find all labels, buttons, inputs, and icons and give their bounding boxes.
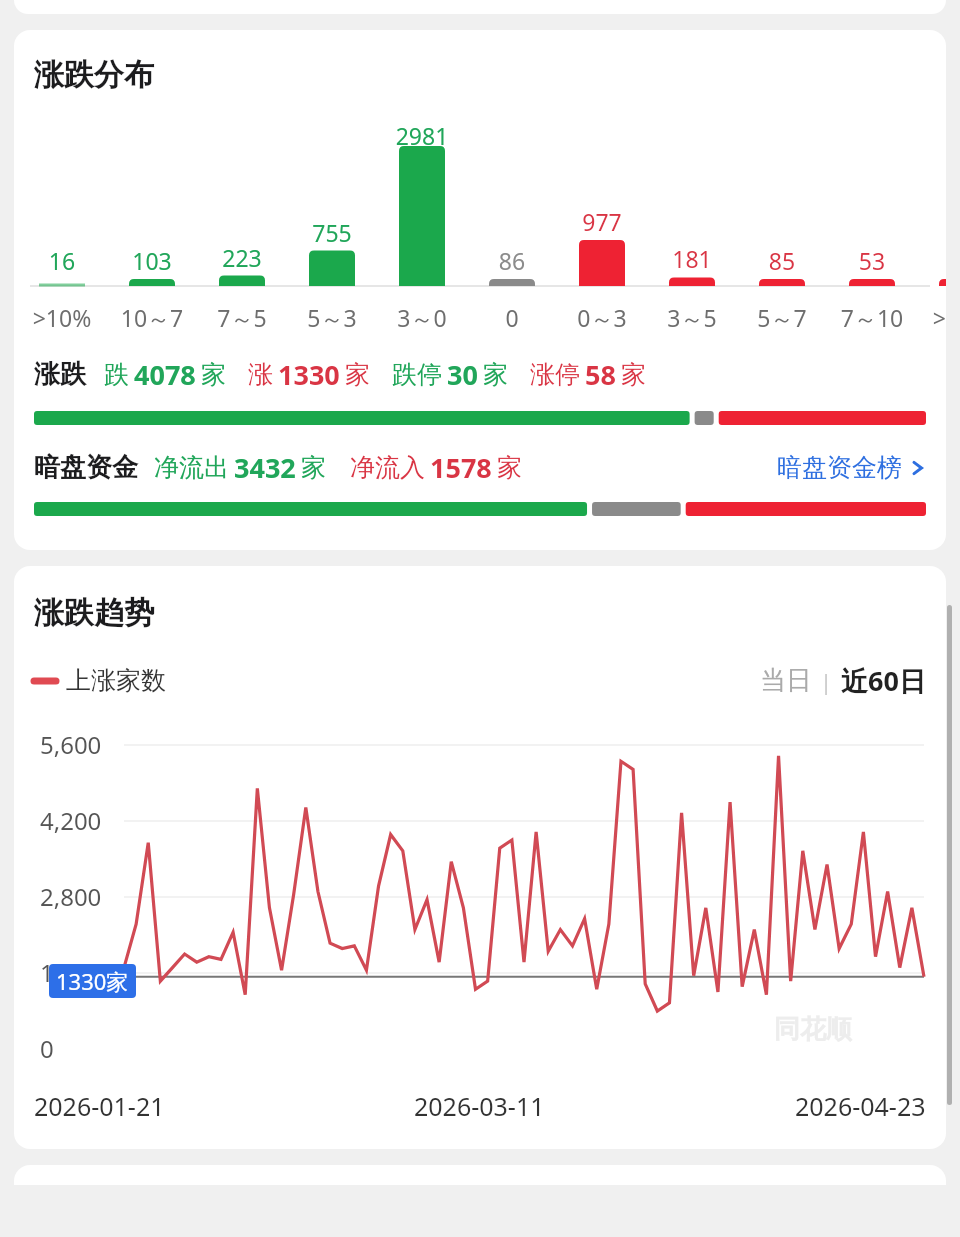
staticText: >10%: [917, 302, 946, 333]
staticText: 3432: [234, 449, 296, 486]
staticText: 涨停: [530, 359, 580, 390]
button[interactable]: 涨: [248, 356, 370, 393]
staticText: 5～7: [737, 302, 827, 333]
staticText: 净流入: [350, 452, 425, 483]
staticText: 4078: [134, 356, 196, 393]
staticText: 4,200: [40, 804, 102, 837]
staticText: 家: [483, 359, 508, 390]
staticText: 103: [107, 245, 197, 276]
staticText: 53: [827, 245, 917, 276]
staticText: 2,800: [40, 880, 102, 913]
button[interactable]: 暗盘资金榜: [777, 452, 926, 483]
staticText: 5～3: [287, 302, 377, 333]
staticText: 86: [467, 245, 557, 276]
staticText: 5,600: [40, 728, 102, 761]
staticText: 181: [647, 243, 737, 274]
staticText: 85: [737, 245, 827, 276]
staticText: 7～5: [197, 302, 287, 333]
staticText: 2026-04-23: [795, 1089, 926, 1123]
staticText: 跌停: [392, 359, 442, 390]
staticText: 3～0: [377, 302, 467, 333]
staticText: 家: [345, 359, 370, 390]
staticText: 30: [447, 356, 478, 393]
staticText: 58: [585, 356, 616, 393]
staticText: 上涨家数: [66, 665, 166, 696]
staticText: 0～3: [557, 302, 647, 333]
staticText: 2026-03-11: [414, 1089, 545, 1123]
staticText: 涨跌: [34, 358, 86, 391]
staticText: 家: [201, 359, 226, 390]
button[interactable]: 涨停: [530, 356, 646, 393]
staticText: 1578: [430, 449, 492, 486]
staticText: |: [820, 666, 833, 696]
staticText: 7～10: [827, 302, 917, 333]
button[interactable]: 当日: [760, 662, 926, 699]
staticText: 家: [301, 452, 326, 483]
staticText: 977: [557, 206, 647, 237]
button[interactable]: 跌: [104, 356, 226, 393]
button[interactable]: 跌停: [392, 356, 508, 393]
staticText: 0: [467, 302, 557, 333]
staticText: 223: [197, 242, 287, 273]
staticText: 2026-01-21: [34, 1089, 165, 1123]
staticText: 1330: [278, 356, 340, 393]
staticText: 755: [287, 217, 377, 248]
staticText: 近60日: [841, 662, 926, 699]
staticText: >10%: [17, 302, 107, 333]
staticText: 涨跌分布: [34, 56, 154, 94]
staticText: 0: [40, 1032, 54, 1065]
staticText: 涨: [248, 359, 273, 390]
staticText: 暗盘资金: [34, 451, 138, 484]
staticText: 1,400: [40, 956, 102, 989]
staticText: 净流出: [154, 452, 229, 483]
button[interactable]: 净流出: [154, 449, 326, 486]
staticText: 跌: [104, 359, 129, 390]
staticText: 16: [17, 245, 107, 276]
staticText: 暗盘资金榜: [777, 452, 902, 483]
staticText: 同花顺: [774, 1013, 852, 1046]
staticText: 1330家: [56, 966, 129, 996]
staticText: 涨跌趋势: [34, 594, 154, 632]
staticText: 3～5: [647, 302, 737, 333]
staticText: 家: [621, 359, 646, 390]
staticText: 当日: [760, 664, 812, 697]
staticText: 2981: [377, 120, 467, 151]
staticText: 10～7: [107, 302, 197, 333]
button[interactable]: 净流入: [350, 449, 522, 486]
staticText: 家: [497, 452, 522, 483]
